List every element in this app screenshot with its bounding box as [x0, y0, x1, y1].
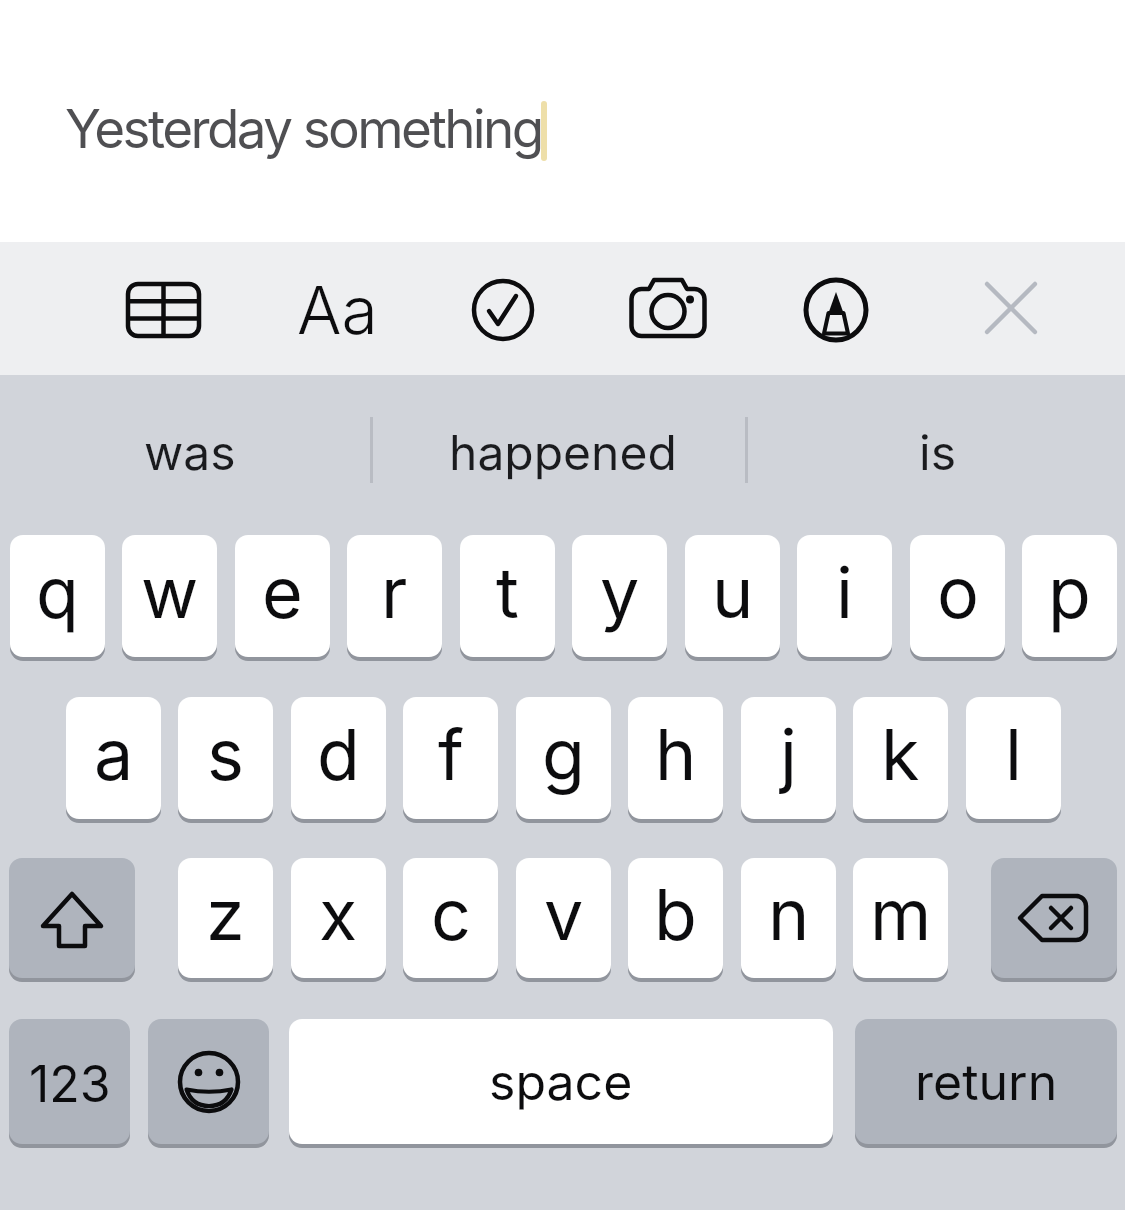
- button[interactable]: space: [289, 1019, 833, 1144]
- button[interactable]: q: [10, 535, 105, 657]
- button[interactable]: f: [403, 697, 498, 819]
- staticText: k: [881, 712, 920, 797]
- button[interactable]: e: [235, 535, 330, 657]
- button[interactable]: Aa: [137, 260, 537, 360]
- button[interactable]: [803, 277, 869, 343]
- button[interactable]: [126, 282, 201, 338]
- button[interactable]: r: [347, 535, 442, 657]
- staticText: m: [870, 872, 932, 957]
- button[interactable]: s: [178, 697, 273, 819]
- button[interactable]: o: [910, 535, 1005, 657]
- button[interactable]: v: [516, 858, 611, 978]
- button[interactable]: y: [572, 535, 667, 657]
- button[interactable]: k: [853, 697, 948, 819]
- staticText: j: [780, 712, 797, 797]
- staticText: a: [94, 712, 134, 797]
- staticText: w: [141, 550, 199, 635]
- staticText: z: [206, 872, 245, 957]
- staticText: p: [1048, 550, 1091, 635]
- button[interactable]: [148, 1019, 269, 1144]
- button[interactable]: was: [0, 402, 390, 502]
- staticText: b: [654, 872, 697, 957]
- button[interactable]: u: [685, 535, 780, 657]
- button[interactable]: d: [291, 697, 386, 819]
- staticText: h: [655, 712, 697, 797]
- button[interactable]: [9, 858, 135, 978]
- staticText: t: [496, 550, 519, 635]
- button[interactable]: return: [855, 1019, 1117, 1144]
- button[interactable]: w: [122, 535, 217, 657]
- staticText: e: [262, 550, 303, 635]
- staticText: q: [36, 550, 79, 635]
- staticText: d: [317, 712, 360, 797]
- button[interactable]: z: [178, 858, 273, 978]
- button[interactable]: h: [628, 697, 723, 819]
- staticText: is: [919, 423, 956, 481]
- staticText: Yesterday something: [65, 97, 542, 161]
- button[interactable]: c: [403, 858, 498, 978]
- button[interactable]: x: [291, 858, 386, 978]
- button[interactable]: n: [741, 858, 836, 978]
- staticText: o: [937, 550, 979, 635]
- button[interactable]: [991, 858, 1117, 978]
- staticText: r: [381, 550, 408, 635]
- button[interactable]: g: [516, 697, 611, 819]
- button[interactable]: [375, 375, 750, 535]
- staticText: f: [438, 712, 464, 797]
- button[interactable]: l: [966, 697, 1061, 819]
- staticText: happened: [449, 423, 677, 481]
- staticText: v: [544, 872, 584, 957]
- button[interactable]: [750, 375, 1125, 535]
- staticText: space: [489, 1052, 633, 1112]
- staticText: n: [768, 872, 810, 957]
- button[interactable]: happened: [363, 402, 763, 502]
- staticText: Aa: [297, 270, 378, 350]
- staticText: l: [1005, 712, 1022, 797]
- button[interactable]: [0, 375, 375, 535]
- staticText: was: [144, 423, 236, 481]
- staticText: c: [431, 872, 471, 957]
- button[interactable]: is: [737, 402, 1125, 502]
- button[interactable]: [470, 277, 536, 343]
- button[interactable]: i: [797, 535, 892, 657]
- button[interactable]: p: [1022, 535, 1117, 657]
- button[interactable]: [986, 283, 1036, 333]
- button[interactable]: b: [628, 858, 723, 978]
- staticText: return: [915, 1052, 1058, 1112]
- button[interactable]: t: [460, 535, 555, 657]
- button[interactable]: 123: [9, 1019, 130, 1144]
- staticText: g: [542, 712, 585, 797]
- staticText: x: [319, 872, 358, 957]
- staticText: s: [207, 712, 244, 797]
- button[interactable]: [629, 277, 707, 339]
- staticText: y: [600, 550, 640, 635]
- button[interactable]: j: [741, 697, 836, 819]
- button[interactable]: a: [66, 697, 161, 819]
- staticText: i: [836, 550, 853, 635]
- staticText: u: [712, 550, 754, 635]
- staticText: 123: [29, 1054, 111, 1114]
- button[interactable]: m: [853, 858, 948, 978]
